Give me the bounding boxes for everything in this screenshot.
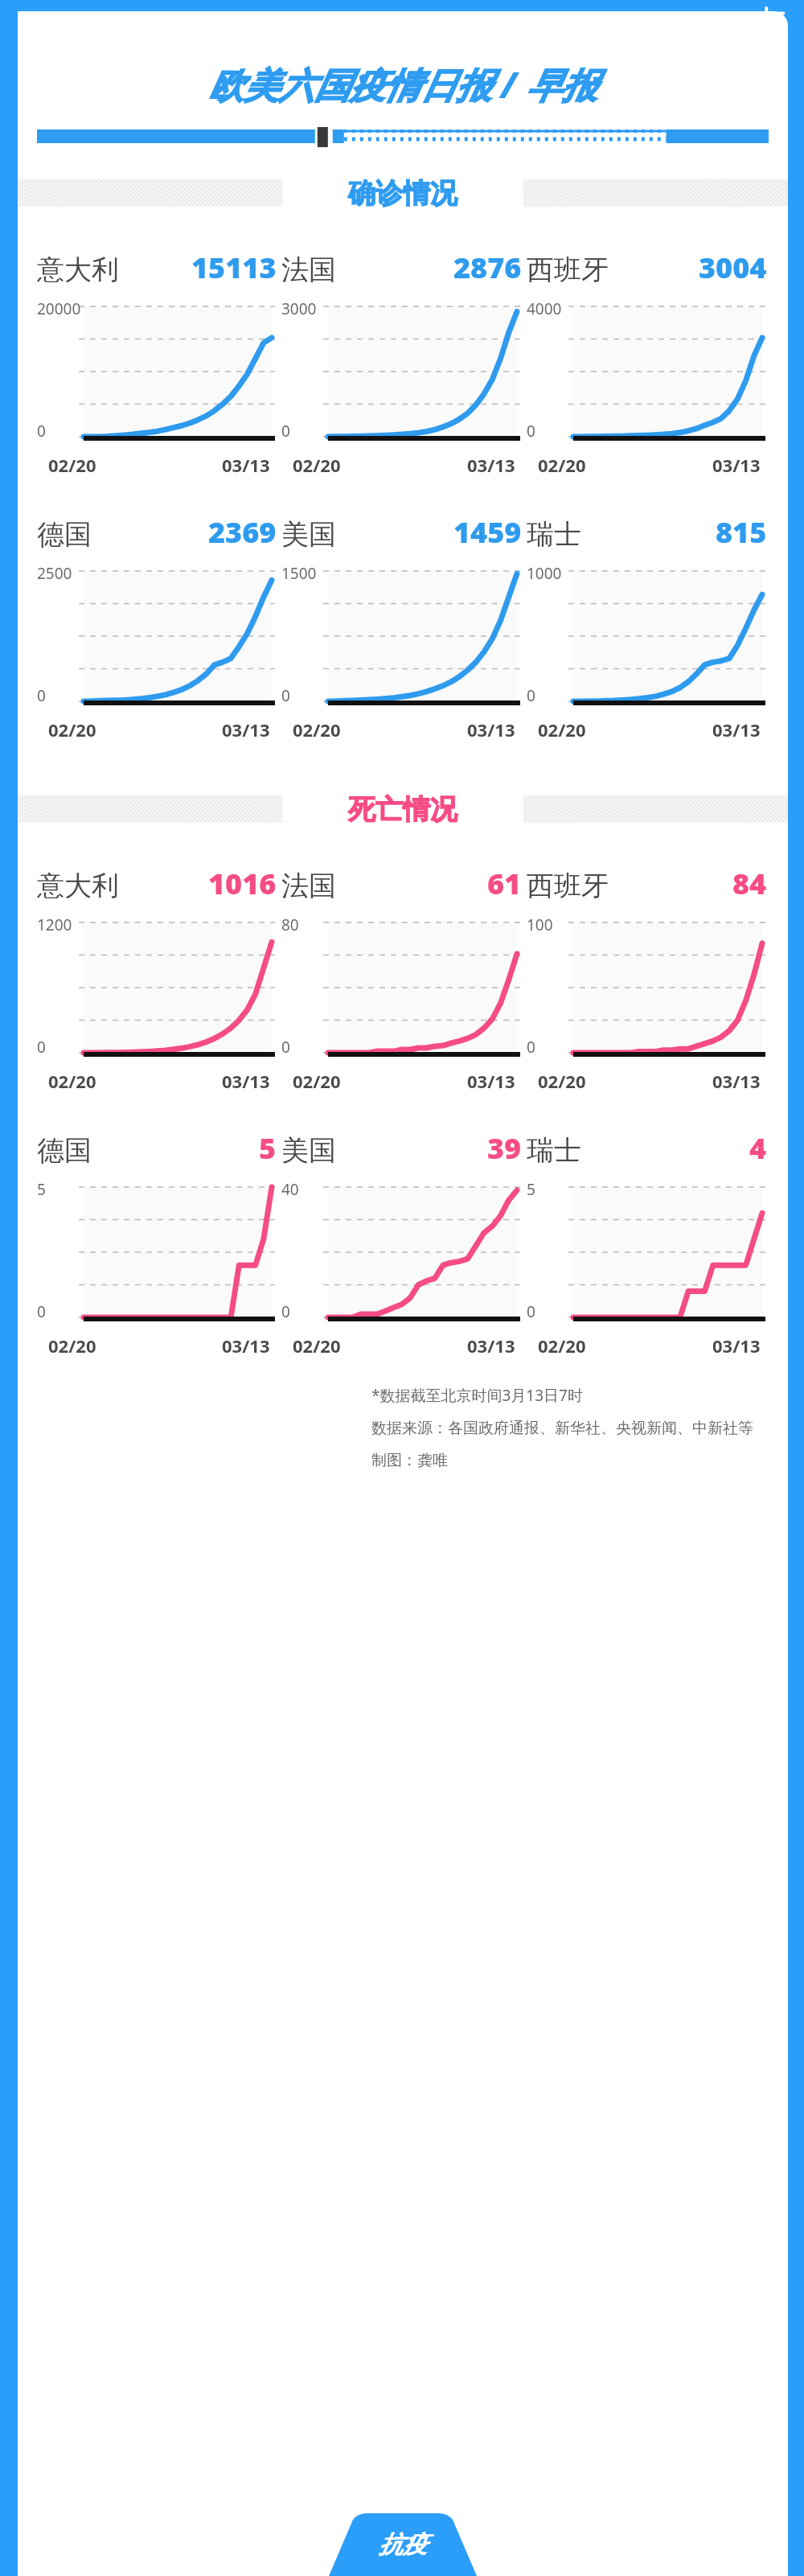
button[interactable]: 1000 bbox=[527, 563, 765, 742]
staticText: 39 bbox=[487, 1128, 522, 1168]
staticText: 02/20 bbox=[293, 1069, 341, 1093]
staticText: 4000 bbox=[527, 298, 562, 319]
button[interactable]: 西班牙 bbox=[527, 864, 772, 903]
button[interactable]: 意大利 bbox=[37, 864, 281, 903]
button[interactable]: 5 bbox=[37, 1179, 275, 1358]
staticText: 03/13 bbox=[712, 1069, 761, 1093]
staticText: 德国 bbox=[37, 517, 92, 552]
staticText: 100 bbox=[527, 914, 553, 935]
staticText: 西班牙 bbox=[527, 869, 609, 903]
staticText: 确诊情况 bbox=[348, 176, 457, 211]
staticText: 法国 bbox=[281, 253, 336, 287]
staticText: 2876 bbox=[453, 248, 522, 287]
staticText: 4 bbox=[749, 1128, 767, 1168]
staticText: 瑞士 bbox=[527, 1133, 581, 1168]
staticText: 1500 bbox=[281, 563, 317, 584]
staticText: 1000 bbox=[527, 563, 562, 584]
staticText: 1016 bbox=[208, 864, 277, 903]
staticText: 03/13 bbox=[712, 717, 761, 742]
staticText: 抗疫 bbox=[379, 2529, 427, 2560]
staticText: 美国 bbox=[281, 517, 336, 552]
staticText: 3000 bbox=[281, 298, 317, 319]
button[interactable]: 德国 bbox=[37, 512, 281, 552]
staticText: 5 bbox=[259, 1128, 277, 1168]
staticText: 02/20 bbox=[293, 717, 341, 742]
staticText: 0 bbox=[281, 1037, 290, 1058]
staticText: 80 bbox=[281, 914, 299, 935]
button[interactable]: 20000 bbox=[37, 298, 275, 477]
staticText: 德国 bbox=[37, 1133, 92, 1168]
button[interactable]: 德国 bbox=[37, 1128, 281, 1168]
button[interactable]: 美国 bbox=[281, 512, 527, 552]
staticText: 0 bbox=[527, 421, 535, 442]
staticText: 瑞士 bbox=[527, 517, 581, 552]
staticText: 死亡情况 bbox=[348, 792, 457, 827]
button[interactable]: 法国 bbox=[281, 248, 527, 287]
staticText: 61 bbox=[487, 864, 522, 903]
staticText: 15113 bbox=[191, 248, 277, 287]
button[interactable]: 意大利 bbox=[37, 248, 281, 287]
staticText: 02/20 bbox=[538, 1333, 586, 1358]
staticText: 02/20 bbox=[48, 453, 96, 477]
staticText: 3004 bbox=[699, 248, 767, 287]
staticText: 02/20 bbox=[48, 1333, 96, 1358]
button[interactable]: 美国 bbox=[281, 1128, 527, 1168]
staticText: 美国 bbox=[281, 1133, 336, 1168]
button[interactable]: 2500 bbox=[37, 563, 275, 742]
staticText: 03/13 bbox=[467, 453, 515, 477]
button[interactable]: 抗疫 bbox=[358, 2523, 448, 2566]
staticText: 02/20 bbox=[293, 453, 341, 477]
staticText: 0 bbox=[281, 1301, 290, 1322]
staticText: 03/13 bbox=[712, 453, 761, 477]
button[interactable]: 法国 bbox=[281, 864, 527, 903]
staticText: 03/13 bbox=[712, 1333, 761, 1358]
staticText: 2369 bbox=[208, 512, 277, 552]
button[interactable]: 瑞士 bbox=[527, 1128, 772, 1168]
staticText: 1459 bbox=[453, 512, 522, 552]
staticText: 02/20 bbox=[538, 453, 586, 477]
staticText: *数据截至北京时间3月13日7时 bbox=[371, 1385, 583, 1406]
staticText: 0 bbox=[281, 421, 290, 442]
button[interactable]: 4000 bbox=[527, 298, 765, 477]
staticText: 制图：龚唯 bbox=[371, 1451, 448, 1470]
staticText: 0 bbox=[281, 685, 290, 706]
staticText: 815 bbox=[716, 512, 767, 552]
staticText: 20000 bbox=[37, 298, 81, 319]
staticText: 03/13 bbox=[467, 717, 515, 742]
button[interactable]: 80 bbox=[281, 914, 520, 1093]
staticText: 03/13 bbox=[222, 717, 270, 742]
staticText: 5 bbox=[527, 1179, 535, 1200]
staticText: 03/13 bbox=[222, 1069, 270, 1093]
staticText: 0 bbox=[37, 421, 46, 442]
staticText: 03/13 bbox=[222, 1333, 270, 1358]
button[interactable]: 3000 bbox=[281, 298, 520, 477]
button[interactable]: 西班牙 bbox=[527, 248, 772, 287]
staticText: 02/20 bbox=[293, 1333, 341, 1358]
staticText: 5 bbox=[37, 1179, 46, 1200]
staticText: 1200 bbox=[37, 914, 72, 935]
staticText: 40 bbox=[281, 1179, 299, 1200]
staticText: 0 bbox=[527, 1301, 535, 1322]
staticText: 欧美六国疫情日报 / 早报 bbox=[208, 60, 597, 109]
staticText: 03/13 bbox=[467, 1069, 515, 1093]
staticText: 02/20 bbox=[538, 1069, 586, 1093]
other: The Paper logo bbox=[730, 5, 793, 58]
staticText: 0 bbox=[527, 1037, 535, 1058]
staticText: 02/20 bbox=[538, 717, 586, 742]
staticText: 0 bbox=[37, 1037, 46, 1058]
staticText: 84 bbox=[732, 864, 767, 903]
button[interactable]: 100 bbox=[527, 914, 765, 1093]
staticText: 02/20 bbox=[48, 1069, 96, 1093]
button[interactable]: 5 bbox=[527, 1179, 765, 1358]
button[interactable]: 瑞士 bbox=[527, 512, 772, 552]
button[interactable]: 1200 bbox=[37, 914, 275, 1093]
staticText: 意大利 bbox=[37, 869, 119, 903]
staticText: 意大利 bbox=[37, 253, 119, 287]
button[interactable]: 1500 bbox=[281, 563, 520, 742]
button[interactable]: 40 bbox=[281, 1179, 520, 1358]
staticText: 0 bbox=[37, 1301, 46, 1322]
staticText: 2500 bbox=[37, 563, 72, 584]
staticText: 0 bbox=[527, 685, 535, 706]
staticText: 03/13 bbox=[467, 1333, 515, 1358]
staticText: 02/20 bbox=[48, 717, 96, 742]
